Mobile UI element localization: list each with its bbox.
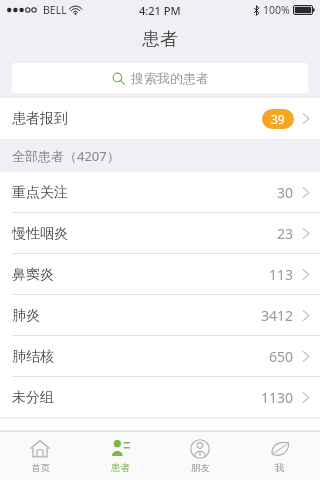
staticText: BELL — [43, 3, 67, 17]
staticText: 未分组 — [12, 389, 54, 407]
staticText: 首页 — [31, 462, 50, 474]
button[interactable]: 肺炎 — [0, 295, 320, 336]
button[interactable]: 重点关注 — [0, 172, 320, 213]
staticText: 慢性咽炎 — [12, 225, 68, 243]
button[interactable]: 未分组 — [0, 377, 320, 418]
staticText: 肺结核 — [12, 348, 54, 366]
staticText: 朋友 — [191, 462, 210, 474]
button[interactable]: 搜索我的患者 — [12, 63, 308, 93]
staticText: 113 — [269, 265, 294, 284]
button[interactable]: 慢性咽炎 — [0, 213, 320, 254]
button[interactable]: 朋友 — [160, 432, 240, 480]
staticText: 肺炎 — [12, 307, 40, 325]
staticText: 全部患者（4207） — [12, 147, 120, 165]
staticText: 23 — [277, 224, 294, 243]
button[interactable]: 患者 — [80, 432, 160, 480]
staticText: 30 — [277, 183, 294, 202]
button[interactable]: 我 — [240, 432, 320, 480]
staticText: 100% — [263, 3, 290, 17]
staticText: 搜索我的患者 — [131, 70, 209, 86]
button[interactable]: 鼻窦炎 — [0, 254, 320, 295]
staticText: 我 — [275, 462, 285, 474]
button[interactable]: 患者报到 — [0, 98, 320, 139]
staticText: 患者 — [142, 28, 178, 51]
staticText: 4:21 PM — [139, 3, 181, 18]
staticText: 患者报到 — [12, 110, 68, 128]
staticText: 3412 — [261, 306, 294, 325]
staticText: 650 — [269, 347, 294, 366]
staticText: 患者 — [111, 462, 130, 474]
staticText: 重点关注 — [12, 184, 68, 202]
button[interactable]: 肺结核 — [0, 336, 320, 377]
staticText: 39 — [271, 111, 285, 127]
staticText: 鼻窦炎 — [12, 266, 54, 284]
staticText: 1130 — [261, 388, 294, 407]
button[interactable]: 首页 — [0, 432, 80, 480]
